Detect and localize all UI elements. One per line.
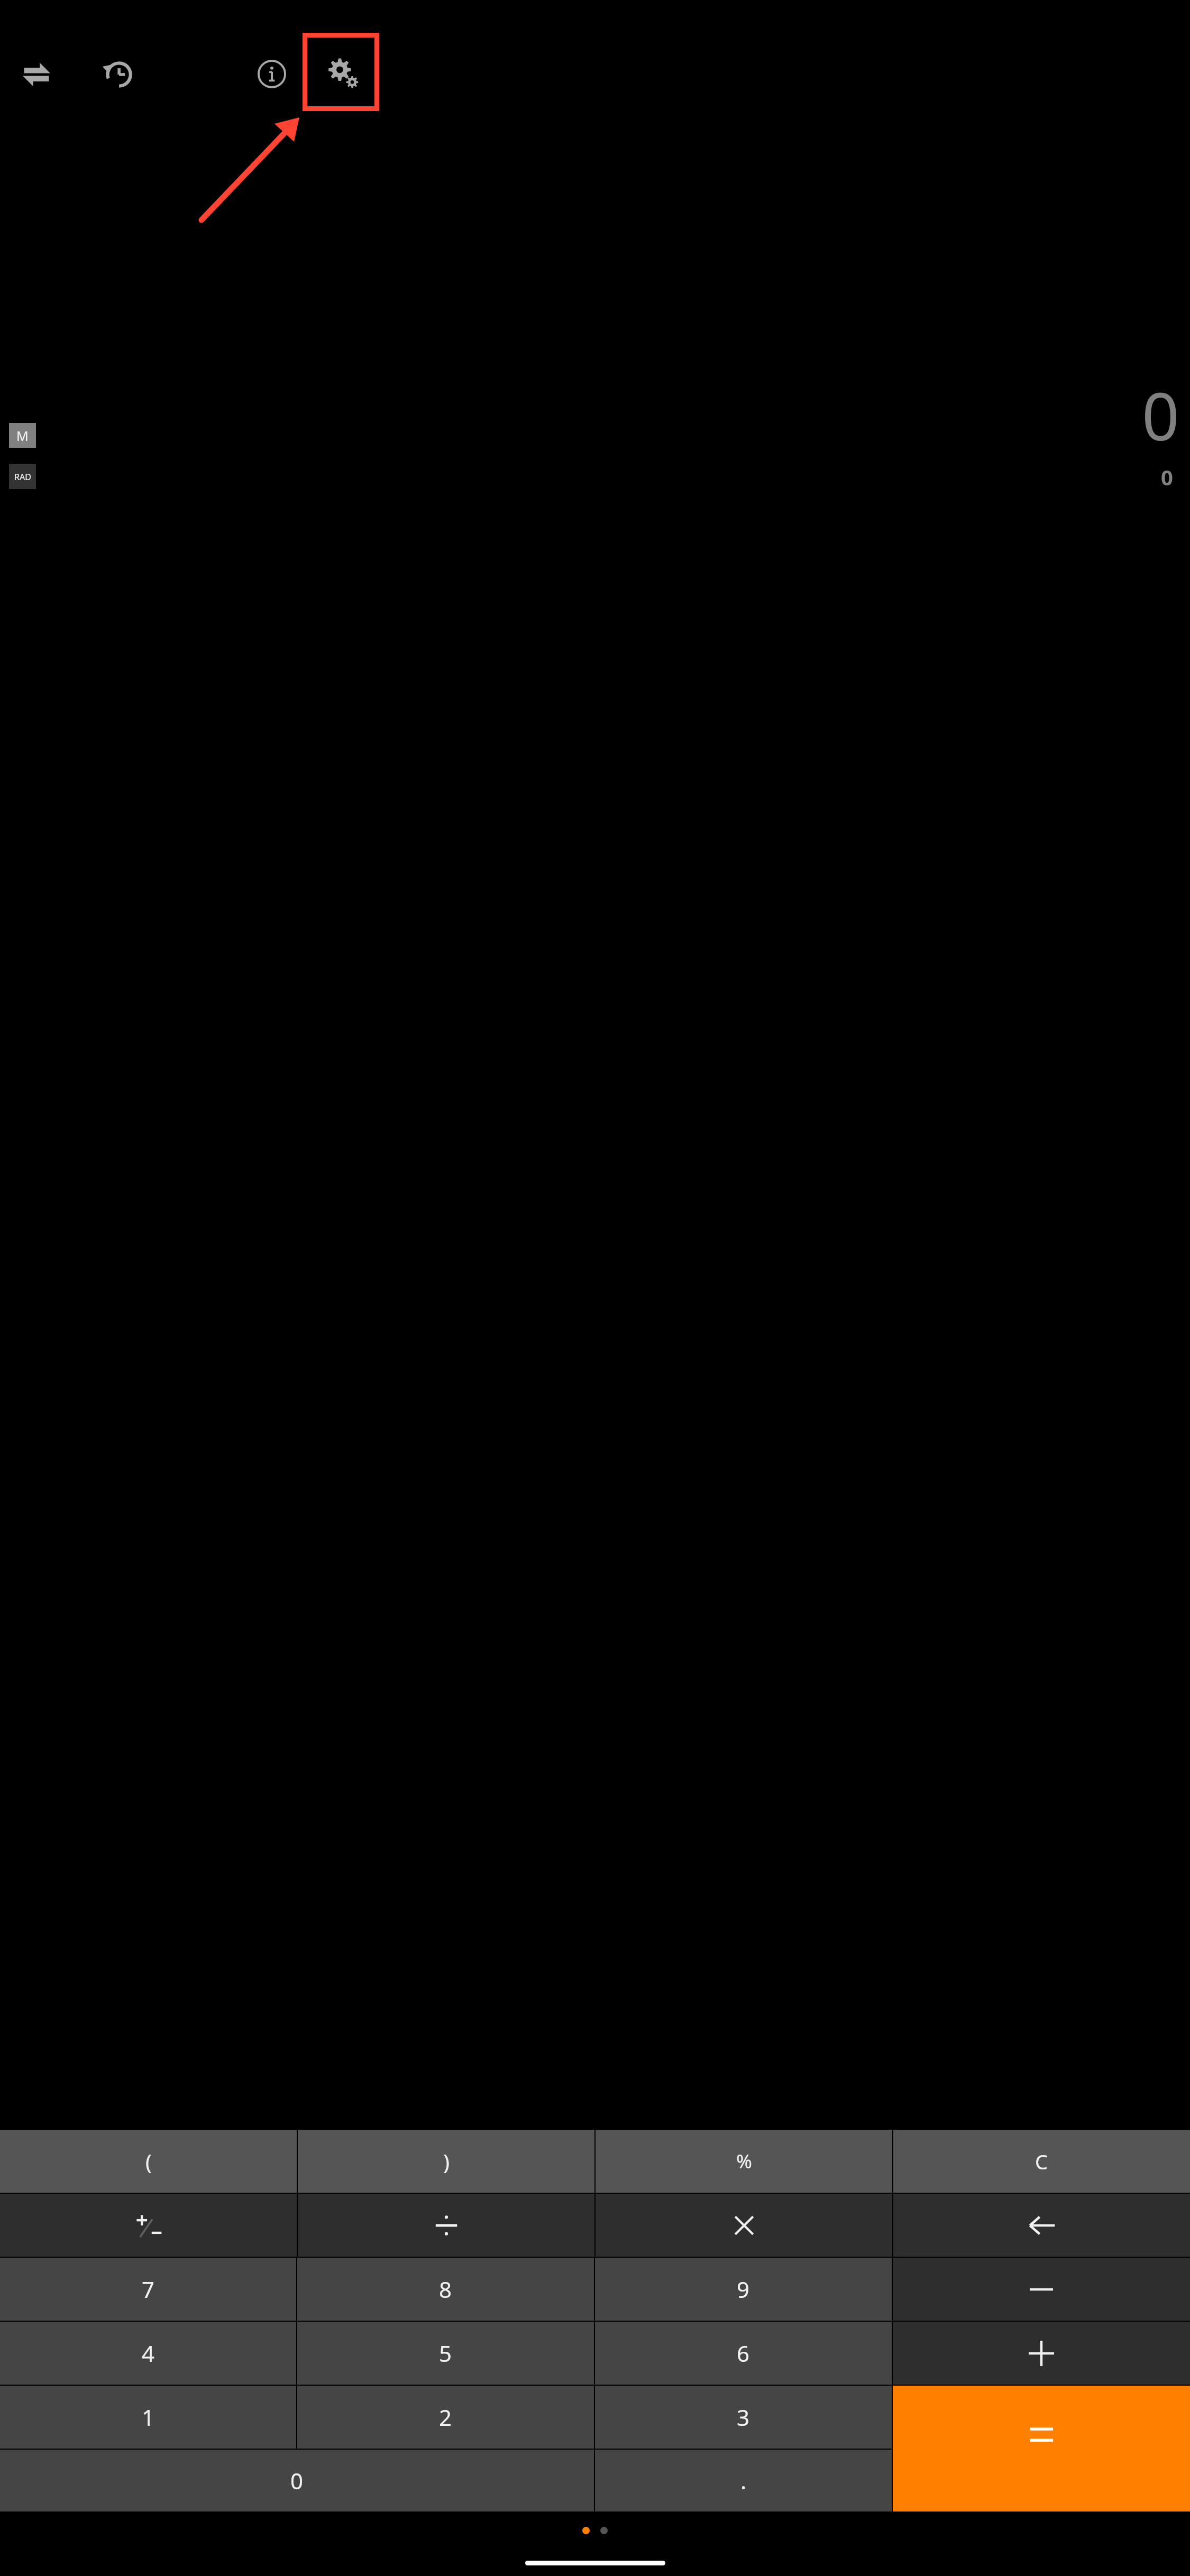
staticText: 9 bbox=[737, 2274, 750, 2304]
button[interactable]: Page 1 bbox=[582, 2527, 590, 2534]
button[interactable]: 6 bbox=[595, 2322, 892, 2385]
staticText: RAD bbox=[14, 471, 31, 483]
staticText: M bbox=[16, 427, 29, 445]
button[interactable]: 2 bbox=[297, 2386, 594, 2449]
button[interactable]: 9 bbox=[595, 2258, 892, 2321]
button[interactable]: Divide bbox=[298, 2194, 594, 2257]
staticText: 7 bbox=[142, 2274, 155, 2304]
staticText: 4 bbox=[142, 2338, 155, 2368]
button[interactable]: Multiply bbox=[596, 2194, 892, 2257]
staticText: 0 bbox=[1161, 463, 1173, 491]
button[interactable]: Info bbox=[249, 51, 295, 97]
button[interactable]: History bbox=[95, 52, 141, 97]
button[interactable]: Plus minus bbox=[0, 2194, 297, 2257]
button[interactable]: Convert bbox=[14, 52, 59, 97]
button[interactable]: Settings bbox=[303, 33, 379, 111]
button[interactable]: Equals bbox=[893, 2386, 1190, 2511]
button[interactable]: 5 bbox=[297, 2322, 594, 2385]
staticText: 0 bbox=[1142, 370, 1179, 459]
staticText: ) bbox=[443, 2147, 450, 2176]
staticText: 8 bbox=[439, 2274, 452, 2304]
button[interactable]: 0 bbox=[0, 2450, 594, 2511]
staticText: 2 bbox=[439, 2402, 452, 2432]
staticText: 0 bbox=[290, 2465, 304, 2496]
staticText: . bbox=[740, 2465, 747, 2496]
button[interactable]: ) bbox=[298, 2130, 594, 2193]
button[interactable]: Plus bbox=[893, 2322, 1190, 2385]
staticText: 3 bbox=[737, 2402, 750, 2432]
button[interactable]: RAD bbox=[9, 464, 36, 489]
staticText: 6 bbox=[737, 2338, 750, 2368]
button[interactable]: 1 bbox=[0, 2386, 296, 2449]
staticText: C bbox=[1035, 2148, 1048, 2175]
button[interactable]: % bbox=[596, 2130, 892, 2193]
button[interactable]: 8 bbox=[297, 2258, 594, 2321]
button[interactable]: ( bbox=[0, 2130, 297, 2193]
button[interactable]: Page 2 bbox=[600, 2527, 608, 2534]
button[interactable]: M bbox=[9, 423, 36, 448]
button[interactable]: 3 bbox=[595, 2386, 892, 2449]
button[interactable]: Backspace bbox=[893, 2194, 1190, 2257]
staticText: 1 bbox=[142, 2402, 155, 2432]
button[interactable]: 7 bbox=[0, 2258, 296, 2321]
staticText: % bbox=[736, 2148, 752, 2174]
button[interactable]: Minus bbox=[893, 2258, 1190, 2321]
button[interactable]: C bbox=[893, 2130, 1190, 2193]
button[interactable]: 4 bbox=[0, 2322, 296, 2385]
staticText: 5 bbox=[439, 2338, 452, 2368]
staticText: ( bbox=[145, 2147, 152, 2176]
button[interactable]: . bbox=[595, 2450, 892, 2511]
